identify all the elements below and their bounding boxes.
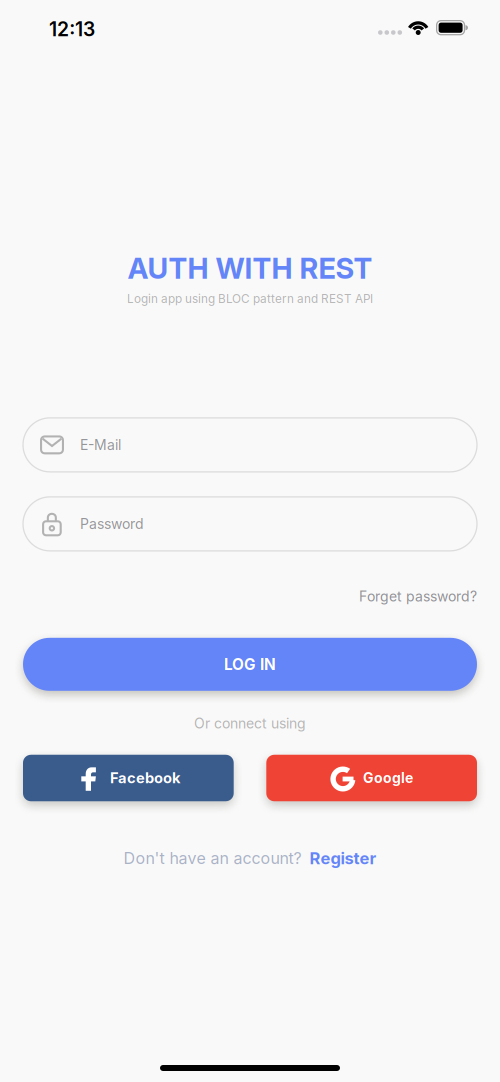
staticText: AUTH WITH REST	[127, 251, 372, 286]
staticText: Login app using BLOC pattern and REST AP…	[127, 292, 373, 306]
staticText: Google	[363, 769, 413, 786]
button[interactable]: Register	[309, 848, 376, 868]
button[interactable]: Google	[266, 755, 477, 801]
button[interactable]: E-Mail	[23, 418, 477, 472]
staticText: Don't have an account?	[123, 849, 301, 868]
button[interactable]: LOG IN	[23, 638, 477, 691]
button[interactable]: Forget password?	[359, 588, 477, 605]
staticText: Facebook	[110, 769, 181, 787]
staticText: E-Mail	[80, 436, 121, 453]
staticText: Register	[309, 848, 376, 868]
staticText: Forget password?	[359, 588, 477, 605]
staticText: Password	[80, 515, 144, 532]
button[interactable]: Facebook	[23, 755, 234, 801]
staticText: 12:13	[49, 17, 95, 41]
staticText: Or connect using	[194, 715, 306, 732]
staticText: LOG IN	[224, 655, 276, 674]
button[interactable]: Password	[23, 497, 477, 551]
